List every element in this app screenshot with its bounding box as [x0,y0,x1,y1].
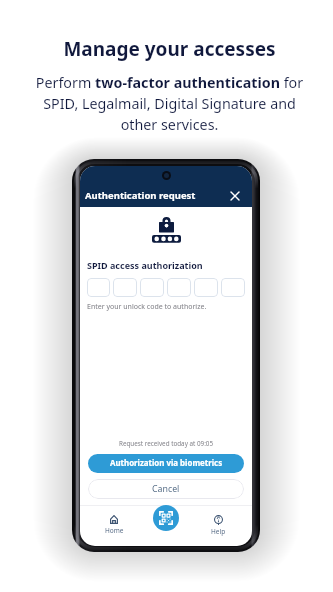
button[interactable]: Help [198,515,238,536]
button[interactable] [87,278,110,297]
staticText: Perform two-factor authentication for SP… [29,73,310,135]
button[interactable] [167,278,191,297]
staticText: Enter your unlock code to authorize. [87,302,207,312]
button[interactable]: Scan QR code [153,505,179,531]
staticText: SPID access authorization [87,259,203,271]
staticText: Authentication request [85,189,196,202]
staticText: Manage your accesses [63,36,276,62]
staticText: Request received today at 09:05 [88,439,244,448]
button[interactable] [113,278,137,297]
button[interactable]: Authorization via biometrics [88,454,244,473]
button[interactable]: Cancel [88,479,244,499]
button[interactable]: Home [94,515,134,535]
staticText: Authorization via biometrics [110,458,223,469]
button[interactable] [140,278,164,297]
button[interactable] [194,278,218,297]
button[interactable] [221,278,245,297]
button[interactable]: Close [227,188,243,204]
staticText: Help [211,527,226,536]
staticText: Cancel [152,483,180,495]
staticText: Home [105,526,124,535]
